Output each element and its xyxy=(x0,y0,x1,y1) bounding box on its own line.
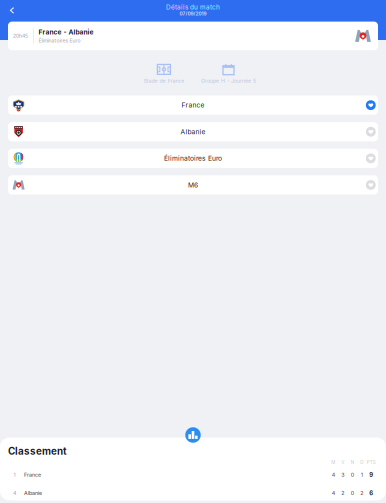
staticText: 4 xyxy=(13,490,16,496)
button[interactable]: Ajouter aux favoris xyxy=(364,151,378,165)
staticText: Détails du match xyxy=(166,3,220,11)
staticText: 6 xyxy=(369,490,373,497)
staticText: 2 xyxy=(360,490,363,496)
staticText: M xyxy=(331,460,335,465)
staticText: 4 xyxy=(332,471,335,478)
staticText: Groupe H - Journée 5 xyxy=(201,78,256,84)
staticText: 07/09/2019 xyxy=(179,11,206,17)
staticText: France xyxy=(24,471,41,478)
button[interactable]: M6 xyxy=(8,175,378,195)
staticText: Albanie xyxy=(24,490,42,496)
staticText: 20h45 xyxy=(13,33,28,39)
staticText: 3 xyxy=(341,471,344,478)
staticText: 4 xyxy=(332,490,335,496)
staticText: D xyxy=(360,460,363,465)
staticText: Éliminatoires Euro xyxy=(38,38,80,44)
staticText: Stade de France xyxy=(143,77,184,84)
staticText: 0 xyxy=(351,471,354,478)
staticText: France xyxy=(181,101,204,109)
staticText: 0 xyxy=(351,490,354,496)
staticText: Albanie xyxy=(180,128,205,136)
staticText: Classement xyxy=(8,445,67,457)
staticText: Éliminatoires Euro xyxy=(164,154,222,162)
button[interactable]: Ajouter aux favoris xyxy=(364,125,378,139)
button[interactable]: Albanie xyxy=(8,122,378,141)
staticText: 1 xyxy=(13,471,15,478)
staticText: 1 xyxy=(361,471,363,478)
staticText: 2 xyxy=(341,490,344,496)
button[interactable]: France xyxy=(8,96,378,115)
button[interactable]: Retirer des favoris xyxy=(364,98,378,112)
button[interactable]: Retour xyxy=(3,1,21,19)
staticText: V xyxy=(341,460,344,465)
staticText: N xyxy=(351,460,354,465)
staticText: 9 xyxy=(369,471,373,478)
staticText: PTS xyxy=(367,460,376,465)
button[interactable]: Ajouter aux favoris xyxy=(364,178,378,192)
button[interactable]: Classement xyxy=(182,424,204,446)
button[interactable]: Éliminatoires Euro xyxy=(8,149,378,168)
staticText: France - Albanie xyxy=(38,28,93,36)
staticText: M6 xyxy=(188,181,198,189)
